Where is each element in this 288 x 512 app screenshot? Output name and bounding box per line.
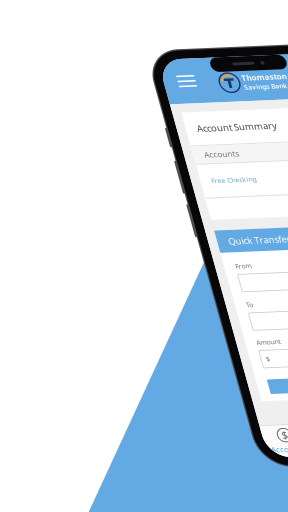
staticText: Quick Transfer bbox=[175, 243, 237, 255]
staticText: Free Checking bbox=[175, 182, 220, 191]
button[interactable]: Menu bbox=[163, 71, 193, 97]
button[interactable]: $ bbox=[244, 443, 288, 469]
staticText: Accounts bbox=[175, 154, 210, 165]
staticText: Savings Bank bbox=[233, 88, 276, 97]
button[interactable]: Free Checking bbox=[164, 170, 288, 204]
staticText: Transfer bbox=[228, 394, 259, 405]
staticText: Account Summary bbox=[175, 126, 255, 139]
button[interactable]: Transfer bbox=[175, 392, 288, 407]
staticText: To bbox=[175, 310, 182, 319]
staticText: $ bbox=[263, 443, 269, 457]
staticText: Deposit bbox=[251, 459, 281, 469]
staticText: Thomaston bbox=[233, 77, 278, 88]
